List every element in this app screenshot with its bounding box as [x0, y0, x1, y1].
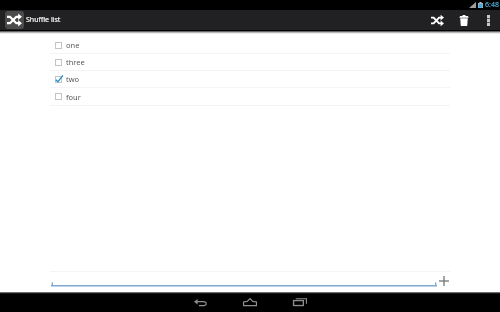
button[interactable]: Add item: [437, 274, 450, 287]
button[interactable]: Delete: [451, 10, 476, 30]
staticText: one: [66, 40, 80, 50]
button[interactable]: App icon, navigate up: [5, 11, 24, 29]
button[interactable]: one: [0, 37, 500, 54]
staticText: 6:48: [485, 0, 499, 10]
staticText: Shuffle list: [26, 15, 61, 25]
button[interactable]: three: [0, 54, 500, 71]
button[interactable]: Recent apps: [275, 292, 325, 312]
button[interactable]: two: [0, 71, 500, 88]
button[interactable]: Back: [175, 292, 225, 312]
button[interactable]: More options: [476, 10, 500, 30]
staticText: four: [66, 92, 81, 102]
staticText: three: [66, 57, 85, 67]
button[interactable]: Home: [225, 292, 275, 312]
button[interactable]: Shuffle: [424, 10, 451, 30]
button[interactable]: four: [0, 88, 500, 106]
staticText: two: [66, 74, 80, 84]
button[interactable]: New item text field: [51, 281, 437, 287]
